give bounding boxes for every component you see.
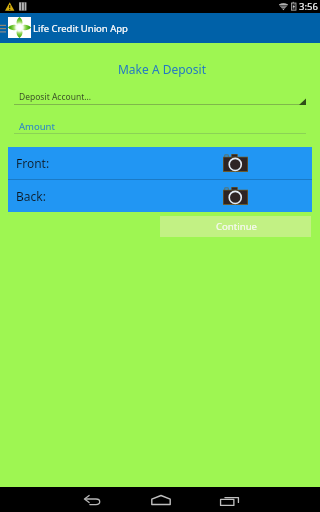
staticText: Deposit Account... bbox=[19, 91, 92, 103]
staticText: Amount bbox=[19, 120, 55, 133]
button[interactable]: Navigation menu bbox=[0, 13, 6, 43]
staticText: 3:56 bbox=[299, 0, 318, 13]
button[interactable]: Front: bbox=[8, 147, 312, 179]
button[interactable]: Home bbox=[126, 487, 195, 512]
staticText: Back: bbox=[16, 188, 46, 204]
button[interactable]: Amount bbox=[14, 120, 306, 134]
staticText: Life Credit Union App bbox=[33, 22, 128, 35]
staticText: Front: bbox=[16, 155, 50, 171]
button[interactable]: Back: bbox=[8, 180, 312, 212]
button[interactable]: Deposit Account... bbox=[14, 91, 306, 105]
staticText: Continue bbox=[216, 220, 258, 233]
button[interactable]: Recent apps bbox=[195, 487, 264, 512]
button[interactable]: Back bbox=[57, 487, 126, 512]
staticText: Make A Deposit bbox=[2, 61, 320, 77]
button[interactable]: Continue bbox=[160, 216, 311, 237]
